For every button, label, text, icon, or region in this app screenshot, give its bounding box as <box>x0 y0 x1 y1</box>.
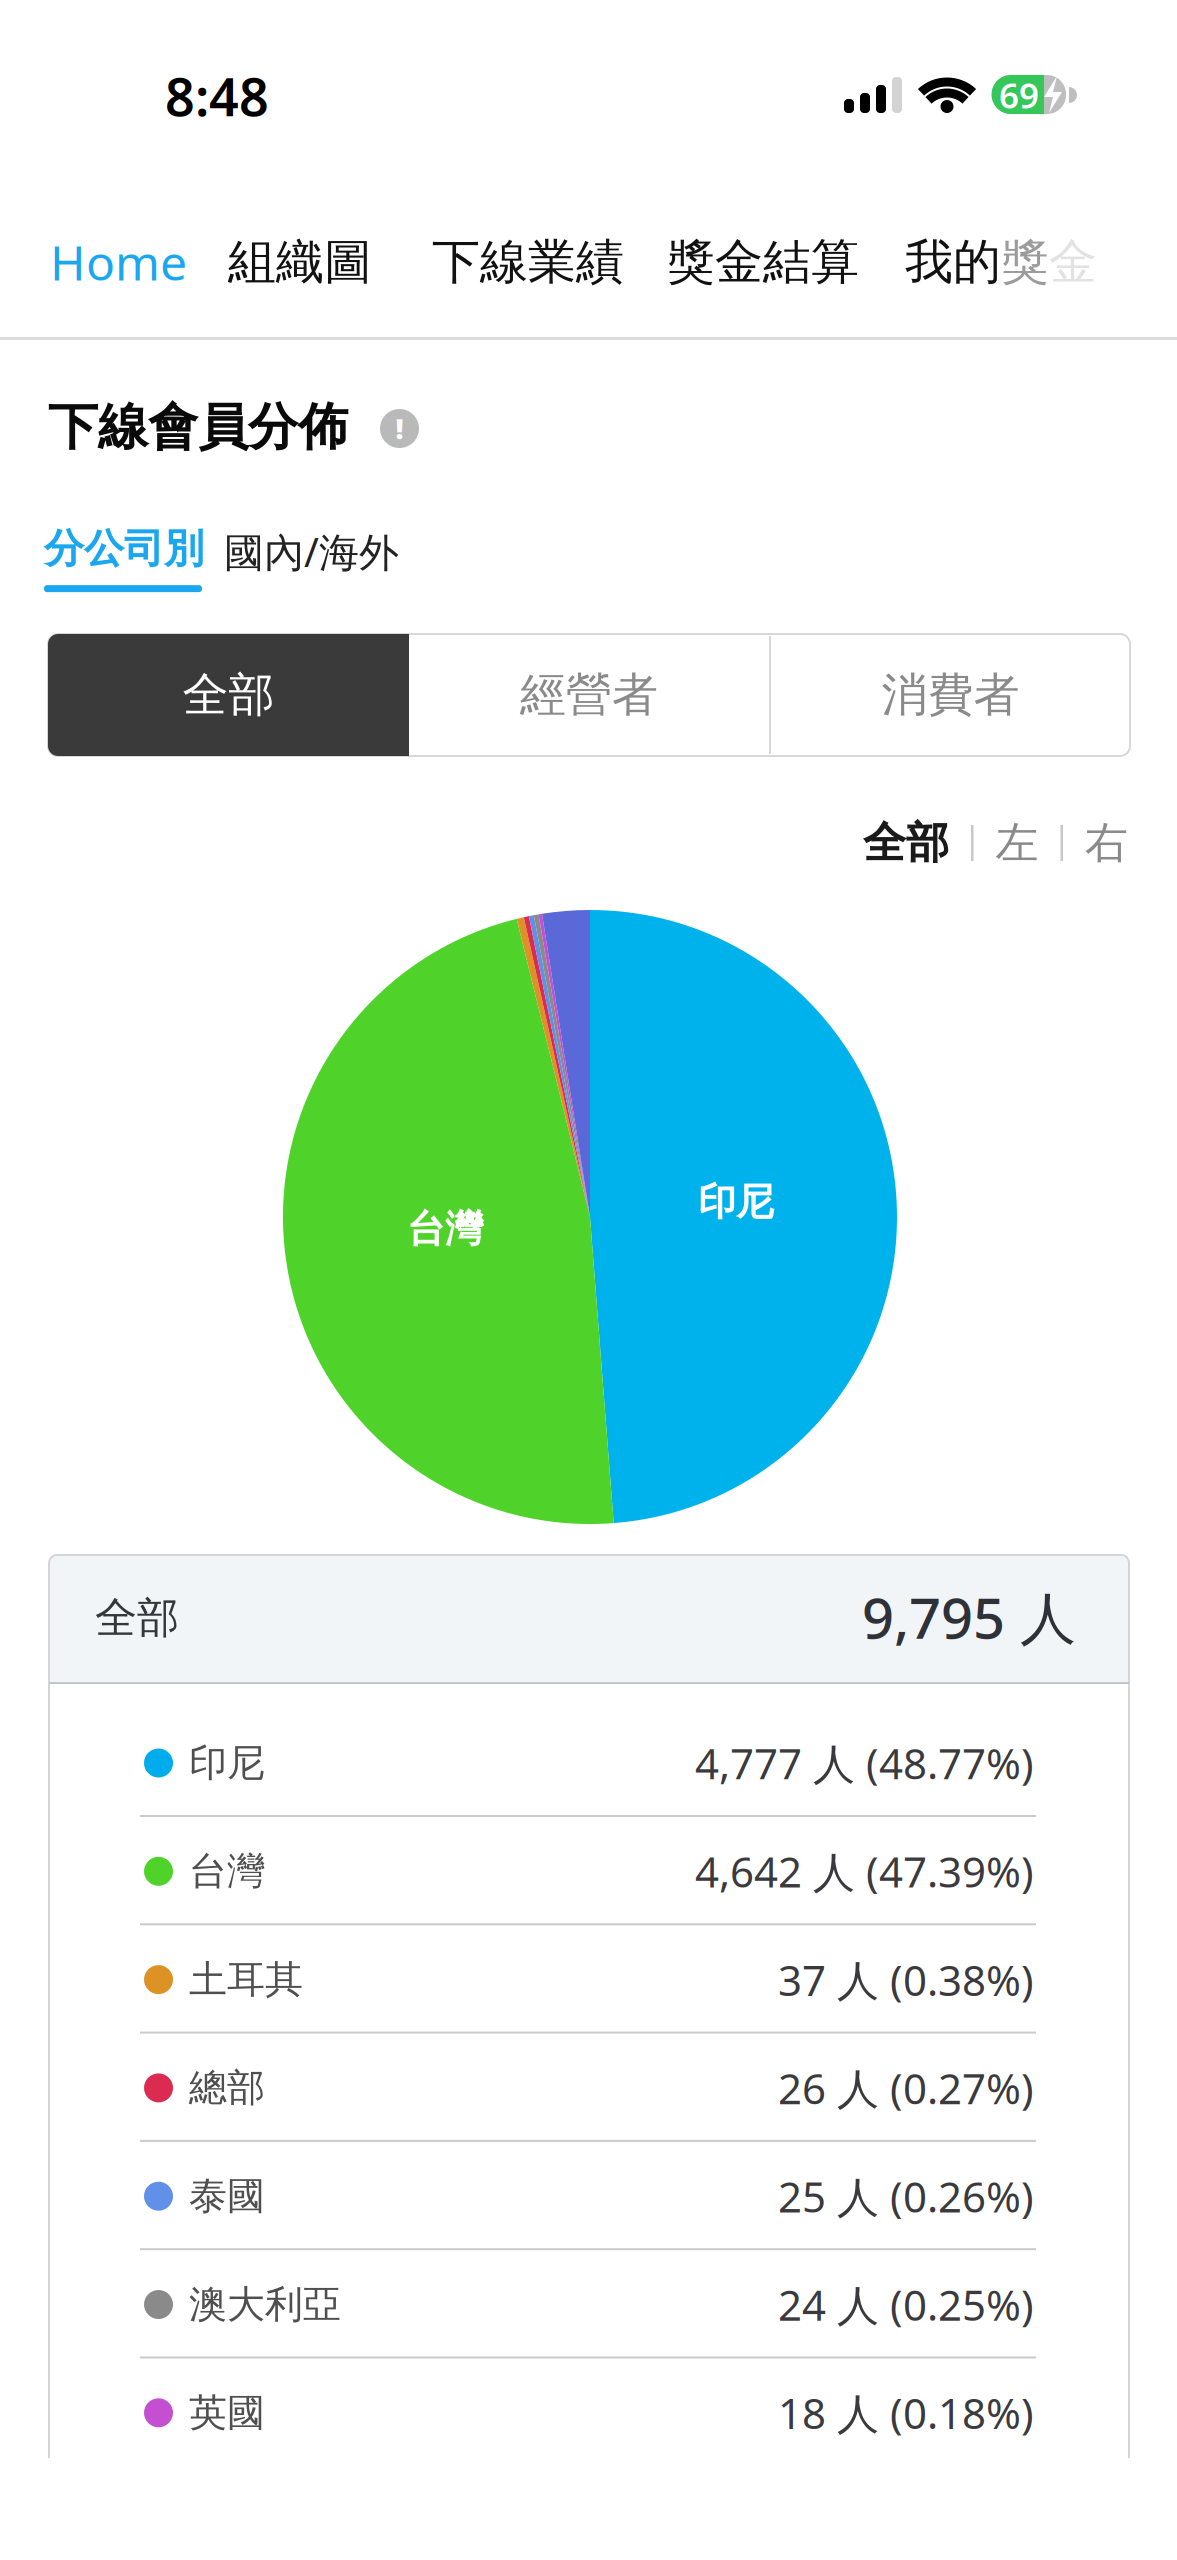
staticText: 澳大利亞 <box>189 2281 341 2328</box>
staticText: 左 <box>995 817 1038 869</box>
button[interactable]: 國內/海外 <box>224 524 474 579</box>
button[interactable]: ! <box>380 409 419 448</box>
staticText: 分公司別 <box>44 524 204 573</box>
staticText: 台灣 <box>189 1848 265 1895</box>
button[interactable]: 全部 <box>863 817 949 869</box>
staticText: 4,777 人 (48.77%) <box>695 1735 1034 1791</box>
button[interactable]: 分公司別 <box>44 524 204 592</box>
button[interactable]: 左 <box>995 817 1038 869</box>
staticText: 25 人 (0.26%) <box>778 2168 1034 2224</box>
button[interactable]: 右 <box>1085 817 1128 869</box>
button[interactable]: 消費者 <box>771 634 1130 756</box>
staticText: 下線業績 <box>432 232 624 291</box>
staticText: 泰國 <box>189 2173 265 2220</box>
staticText: 37 人 (0.38%) <box>778 1952 1034 2007</box>
staticText: 組織圖 <box>228 232 372 291</box>
staticText: 全部 <box>863 817 949 869</box>
staticText: 下線會員分佈 <box>48 396 348 458</box>
staticText: 18 人 (0.18%) <box>778 2385 1034 2441</box>
button[interactable]: Home <box>50 227 250 297</box>
staticText: 金 <box>1049 232 1097 291</box>
staticText: 土耳其 <box>189 1956 303 2003</box>
staticText: 國內/海外 <box>224 525 399 578</box>
staticText: 消費者 <box>881 667 1019 723</box>
staticText: 全部 <box>182 667 274 723</box>
staticText: 經營者 <box>520 667 658 723</box>
staticText: 英國 <box>189 2389 265 2436</box>
staticText: 69 <box>999 72 1039 118</box>
staticText: 獎金結算 <box>667 232 859 291</box>
staticText: 台灣 <box>407 1206 483 1252</box>
button[interactable]: 經營者 <box>409 634 769 756</box>
staticText: 獎 <box>1001 232 1049 291</box>
button[interactable]: 全部 <box>48 634 409 756</box>
staticText: 8:48 <box>165 61 269 131</box>
staticText: 印尼 <box>189 1740 265 1786</box>
staticText: 4,642 人 (47.39%) <box>695 1843 1034 1899</box>
button[interactable]: 下線業績 <box>432 227 662 297</box>
staticText: 印尼 <box>698 1179 774 1225</box>
staticText: 右 <box>1085 817 1128 869</box>
button[interactable]: 我的 <box>905 227 1177 297</box>
staticText: ! <box>395 410 403 447</box>
staticText: 全部 <box>95 1592 179 1644</box>
button[interactable]: 組織圖 <box>228 227 428 297</box>
staticText: Home <box>50 230 187 294</box>
staticText: 總部 <box>189 2065 265 2111</box>
staticText: 26 人 (0.27%) <box>778 2060 1034 2116</box>
staticText: 9,795 人 <box>862 1580 1076 1654</box>
staticText: 我的 <box>905 232 1001 291</box>
staticText: 24 人 (0.25%) <box>778 2277 1034 2332</box>
button[interactable]: 獎金結算 <box>667 227 897 297</box>
